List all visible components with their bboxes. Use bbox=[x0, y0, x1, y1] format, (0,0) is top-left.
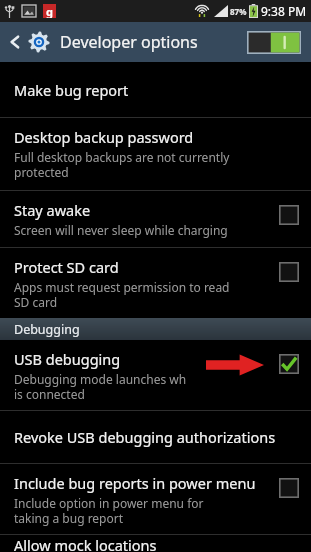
staticText: Make bug report bbox=[14, 80, 129, 100]
button[interactable]: USB debugging bbox=[0, 340, 311, 410]
staticText: Desktop backup password bbox=[14, 127, 194, 147]
button[interactable]: Desktop backup password bbox=[0, 118, 311, 190]
other: Back bbox=[6, 33, 24, 51]
button[interactable]: Include bug reports in power menu bbox=[0, 464, 311, 534]
staticText: Include bug reports in power menu bbox=[14, 473, 256, 493]
button[interactable]: Revoke USB debugging authorizations bbox=[0, 411, 311, 463]
button[interactable]: Stay awake bbox=[0, 191, 311, 247]
staticText: g bbox=[46, 4, 53, 18]
staticText: 9:38 PM bbox=[261, 3, 307, 19]
staticText: Apps must request permission to read SD … bbox=[14, 279, 230, 310]
staticText: Screen will never sleep while charging bbox=[14, 222, 228, 238]
staticText: Stay awake bbox=[14, 200, 91, 220]
button[interactable]: Back bbox=[0, 22, 206, 62]
staticText: 87% bbox=[230, 6, 247, 17]
staticText: Developer options bbox=[60, 31, 198, 53]
button[interactable]: Allow mock locations bbox=[0, 535, 311, 552]
staticText: Allow mock locations bbox=[14, 535, 157, 552]
button[interactable]: Developer options on bbox=[245, 30, 303, 55]
staticText: Debugging mode launches wh is connected bbox=[14, 371, 187, 402]
button[interactable]: Protect SD card bbox=[0, 248, 311, 318]
staticText: Full desktop backups are not currently p… bbox=[14, 149, 230, 180]
staticText: Revoke USB debugging authorizations bbox=[14, 427, 276, 447]
staticText: USB debugging bbox=[14, 349, 121, 369]
staticText: Include option in power menu for taking … bbox=[14, 495, 204, 526]
button[interactable]: Make bug report bbox=[0, 62, 311, 117]
staticText: Debugging bbox=[14, 321, 80, 338]
staticText: Protect SD card bbox=[14, 257, 119, 277]
